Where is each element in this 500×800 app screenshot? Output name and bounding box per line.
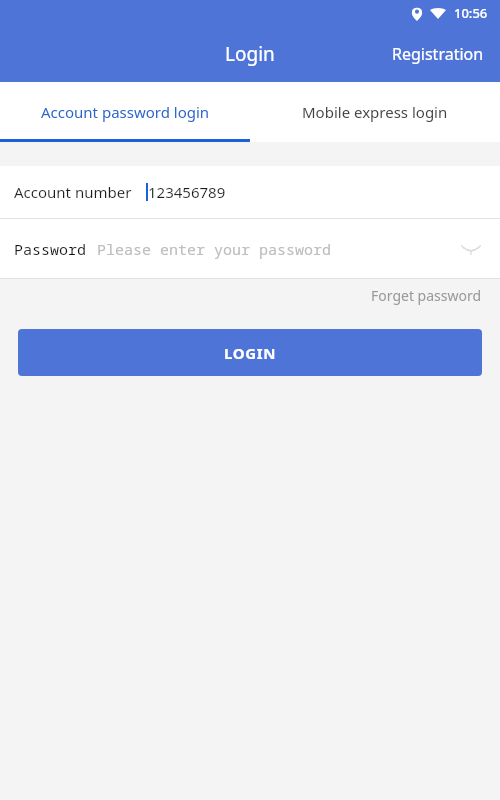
staticText: Account number	[14, 182, 132, 202]
button[interactable]: Registration	[376, 26, 500, 82]
staticText: Forget password	[371, 286, 482, 305]
staticText: Registration	[392, 43, 484, 65]
staticText: LOGIN	[224, 343, 276, 363]
button[interactable]: Forget password	[353, 282, 500, 309]
button[interactable]: Password	[0, 219, 500, 278]
staticText: Mobile express login	[302, 102, 448, 122]
button[interactable]: Account number	[0, 166, 500, 218]
staticText: Please enter your password	[97, 239, 332, 259]
button[interactable]: Show password	[454, 232, 488, 266]
staticText: 10:56	[454, 4, 488, 22]
staticText: Password	[14, 239, 87, 259]
staticText: Login	[225, 41, 275, 67]
button[interactable]: Mobile express login	[250, 82, 500, 142]
button[interactable]: LOGIN	[18, 329, 482, 376]
staticText: Account password login	[41, 102, 210, 122]
button[interactable]: Account password login	[0, 82, 250, 142]
staticText: 123456789	[148, 182, 226, 202]
